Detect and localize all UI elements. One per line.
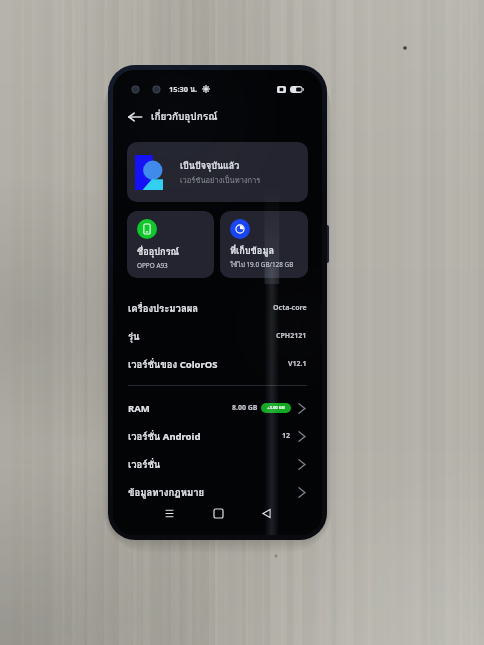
staticText: V12.1 (288, 359, 307, 369)
staticText: 12 (282, 431, 291, 441)
staticText: CPH2121 (276, 331, 307, 341)
button[interactable]: Back (255, 503, 277, 535)
staticText: เครื่องประมวลผล (128, 301, 199, 316)
button[interactable]: ข้อมูลทางกฎหมาย (113, 478, 322, 506)
staticText: เป็นปัจจุบันแล้ว (180, 159, 240, 173)
button[interactable]: ที่เก็บข้อมูล (220, 211, 308, 278)
button[interactable]: Back (125, 107, 145, 127)
button[interactable]: เวอร์ชั่น Android (113, 422, 322, 450)
staticText: เกี่ยวกับอุปกรณ์ (151, 109, 218, 125)
button[interactable]: เป็นปัจจุบันแล้ว (127, 142, 308, 202)
staticText: 8.00 GB (232, 403, 258, 413)
staticText: +3.00 GB (267, 405, 285, 411)
staticText: ข้อมูลทางกฎหมาย (128, 485, 205, 500)
button[interactable]: เวอร์ชั่น (113, 450, 322, 478)
staticText: ชื่ออุปกรณ์ (137, 244, 180, 259)
staticText: OPPO A93 (137, 261, 168, 270)
button[interactable]: เวอร์ชั่นของ ColorOS (113, 350, 322, 378)
staticText: รุ่น (128, 329, 140, 344)
button[interactable]: Home (207, 503, 229, 535)
button[interactable]: Recents (158, 503, 180, 535)
staticText: ที่เก็บข้อมูล (230, 243, 275, 258)
staticText: เวอร์ชั่นของ ColorOS (128, 357, 218, 372)
staticText: เวอร์ชั่น Android (128, 429, 201, 444)
button[interactable]: เครื่องประมวลผล (113, 294, 322, 322)
button[interactable]: ชื่ออุปกรณ์ (127, 211, 214, 278)
staticText: Octa-core (273, 303, 307, 313)
staticText: ใช้ไป 19.0 GB/128 GB (230, 260, 294, 270)
staticText: เวอร์ชั่น (128, 457, 161, 472)
button[interactable]: RAM (113, 394, 322, 422)
staticText: 15:30 น. (169, 83, 198, 95)
button[interactable]: รุ่น (113, 322, 322, 350)
staticText: RAM (128, 402, 150, 415)
staticText: เวอร์ชันอย่างเป็นทางการ (180, 174, 261, 186)
